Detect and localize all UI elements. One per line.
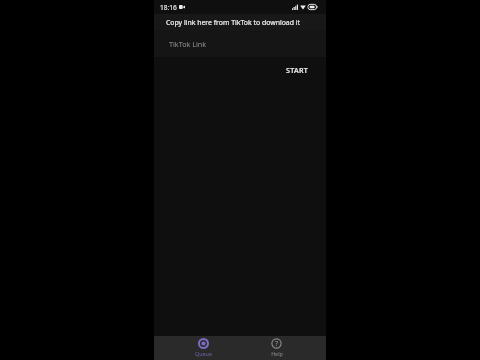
staticText: Help xyxy=(271,350,283,357)
staticText: START xyxy=(286,65,309,75)
staticText: TikTok Link xyxy=(169,39,207,49)
other: Help xyxy=(271,338,282,349)
button[interactable]: START xyxy=(281,61,314,79)
button[interactable]: Help xyxy=(240,336,313,360)
other: Queue xyxy=(198,338,209,349)
staticText: 18:16 xyxy=(160,3,177,12)
button[interactable]: Queue xyxy=(167,336,240,360)
button[interactable]: TikTok Link xyxy=(154,30,326,57)
staticText: ? xyxy=(275,339,279,349)
staticText: Copy link here from TikTok to download i… xyxy=(166,18,300,27)
staticText: Queue xyxy=(195,350,212,357)
